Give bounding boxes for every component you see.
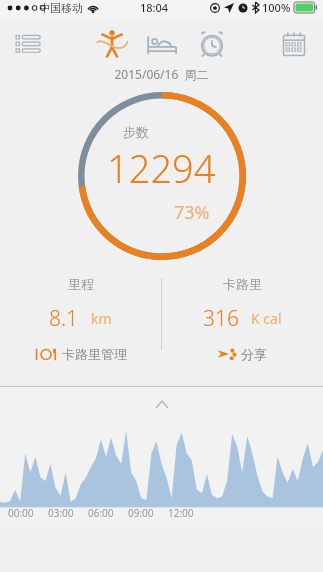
button[interactable]: Steps: [93, 25, 131, 63]
staticText: 12294: [107, 142, 216, 194]
staticText: 316: [203, 304, 239, 333]
staticText: 06:00: [88, 506, 114, 520]
staticText: 18:04: [140, 0, 169, 15]
staticText: 里程: [68, 276, 94, 292]
staticText: 分享: [241, 346, 267, 362]
staticText: km: [91, 309, 112, 328]
staticText: 09:00: [128, 506, 154, 520]
button[interactable]: List: [12, 28, 44, 60]
button[interactable]: 卡路里管理: [29, 344, 133, 364]
staticText: 卡路里管理: [62, 346, 127, 362]
staticText: K cal: [251, 309, 282, 328]
staticText: 步数: [123, 124, 149, 140]
staticText: 8.1: [49, 304, 79, 333]
button[interactable]: 分享: [212, 344, 273, 364]
staticText: 12:00: [168, 506, 194, 520]
staticText: 00:00: [8, 506, 34, 520]
staticText: 中国移动: [39, 1, 83, 15]
staticText: 100%: [262, 0, 291, 15]
button[interactable]: Sleep: [143, 25, 181, 63]
button[interactable]: Alarm: [193, 25, 231, 63]
staticText: 73%: [174, 200, 210, 225]
staticText: 2015/06/16 周二: [114, 66, 209, 82]
button[interactable]: Calendar: [279, 29, 309, 59]
staticText: 03:00: [48, 506, 74, 520]
staticText: 卡路里: [223, 276, 262, 292]
